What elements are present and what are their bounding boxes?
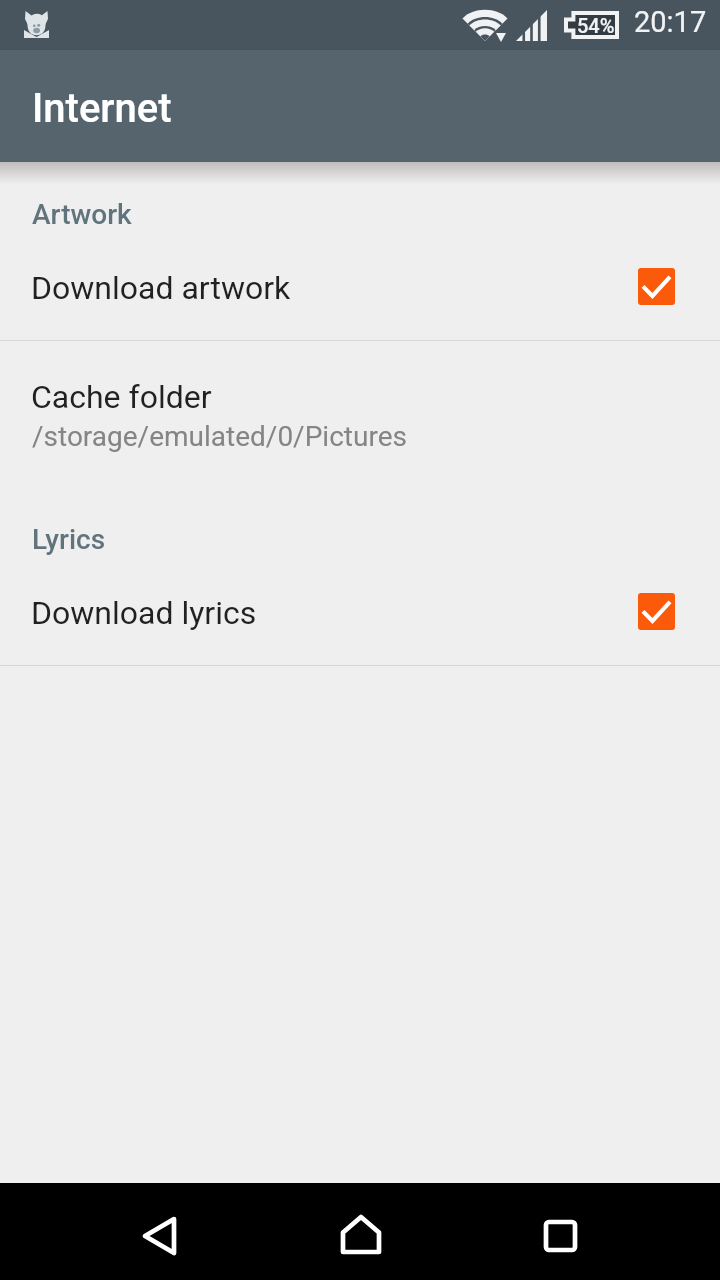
staticText: Download artwork	[31, 269, 291, 307]
button[interactable]: Enabled	[638, 268, 675, 305]
button[interactable]: Download artwork	[0, 244, 720, 340]
button[interactable]: Recent apps	[513, 1187, 608, 1280]
staticText: Internet	[32, 85, 172, 132]
button[interactable]: Back	[112, 1187, 207, 1280]
staticText: Download lyrics	[31, 594, 257, 632]
staticText: Lyrics	[32, 523, 106, 556]
button[interactable]: Cache folder	[0, 341, 720, 509]
staticText: Artwork	[32, 198, 132, 231]
button[interactable]: Enabled	[638, 593, 675, 630]
button[interactable]: Download lyrics	[0, 569, 720, 665]
staticText: /storage/emulated/0/Pictures	[32, 420, 407, 453]
button[interactable]: Home	[313, 1186, 408, 1280]
staticText: Cache folder	[31, 378, 212, 416]
staticText: 54%	[577, 14, 615, 37]
staticText: 20:17	[634, 5, 707, 39]
